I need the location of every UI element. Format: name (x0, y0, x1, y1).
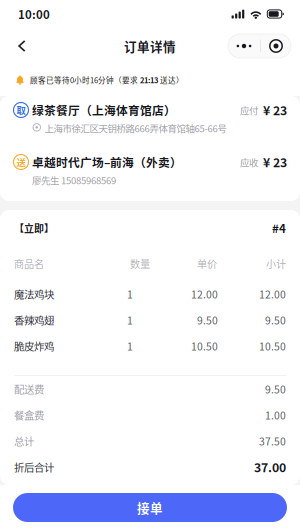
staticText: 脆皮炸鸡 (14, 338, 54, 354)
staticText: 10.50 (259, 338, 286, 354)
staticText: 香辣鸡翅 (14, 312, 54, 328)
staticText: 卓越时代广场–前海（外卖） (32, 153, 182, 170)
staticText: 9.50 (265, 381, 286, 397)
staticText: 1.00 (265, 407, 286, 423)
staticText: 送 (16, 155, 25, 169)
staticText: 10.50 (191, 338, 218, 354)
staticText: 上海市徐汇区天钥桥路666弄体育馆轴65-66号 (44, 121, 226, 135)
staticText: 1 (127, 338, 133, 354)
staticText: 1 (127, 286, 133, 302)
staticText: ¥ 23 (263, 153, 287, 171)
staticText: 9.50 (197, 312, 218, 328)
button[interactable]: 返回 (9, 33, 35, 59)
staticText: ¥ 23 (263, 101, 287, 119)
staticText: 小计 (266, 256, 286, 271)
staticText: 应付 (240, 103, 258, 117)
staticText: 12.00 (259, 286, 286, 302)
staticText: 魔法鸡块 (14, 286, 54, 302)
staticText: 顾客已等待0小时16分钟（要求 21:13 送达） (30, 75, 184, 85)
staticText: 9.50 (265, 312, 286, 328)
staticText: 【立即】 (14, 221, 54, 235)
staticText: 商品名 (14, 256, 44, 271)
staticText: 餐盒费 (14, 407, 44, 423)
staticText: 应收 (240, 155, 258, 169)
staticText: 单价 (197, 256, 217, 271)
staticText: 37.50 (259, 433, 286, 449)
staticText: 配送费 (14, 381, 44, 397)
staticText: 12.00 (191, 286, 218, 302)
staticText: 绿茶餐厅（上海体育馆店） (32, 101, 176, 118)
button[interactable]: 接单 (13, 493, 287, 522)
staticText: 廖先生 15085968569 (32, 173, 116, 187)
staticText: 订单详情 (124, 37, 176, 55)
staticText: 取 (16, 103, 25, 117)
staticText: 数量 (130, 256, 150, 271)
staticText: 37.00 (254, 458, 286, 476)
staticText: 折后合计 (14, 459, 54, 475)
button[interactable]: 更多 (228, 34, 291, 58)
staticText: 1 (127, 312, 133, 328)
staticText: 10:00 (18, 6, 50, 22)
staticText: #4 (272, 220, 286, 236)
staticText: 总计 (14, 433, 34, 449)
staticText: 接单 (137, 498, 163, 516)
